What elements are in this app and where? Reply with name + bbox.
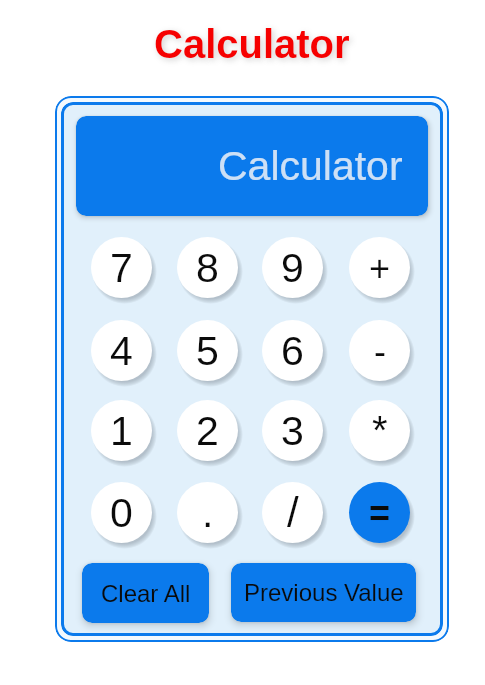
staticText: 7 — [110, 245, 133, 291]
button[interactable]: . — [177, 482, 238, 543]
button[interactable]: 9 — [262, 237, 323, 298]
staticText: / — [287, 489, 299, 536]
button[interactable]: Previous Value — [231, 563, 416, 622]
staticText: 8 — [196, 245, 219, 291]
button[interactable]: 1 — [91, 400, 152, 461]
staticText: 1 — [110, 408, 133, 454]
staticText: 2 — [196, 408, 219, 454]
button[interactable]: = — [349, 482, 410, 543]
staticText: * — [372, 408, 388, 453]
button[interactable]: 6 — [262, 320, 323, 381]
button[interactable]: 4 — [91, 320, 152, 381]
button[interactable]: Clear All — [82, 563, 209, 623]
button[interactable]: 3 — [262, 400, 323, 461]
button[interactable]: 2 — [177, 400, 238, 461]
staticText: 6 — [281, 328, 304, 374]
button[interactable]: 0 — [91, 482, 152, 543]
button[interactable]: Calculator — [76, 116, 428, 216]
staticText: . — [202, 490, 214, 536]
staticText: = — [369, 493, 391, 533]
staticText: + — [369, 248, 391, 288]
button[interactable]: + — [349, 237, 410, 298]
staticText: 4 — [110, 328, 133, 374]
button[interactable]: - — [349, 320, 410, 381]
staticText: 9 — [281, 245, 304, 291]
staticText: 5 — [196, 328, 219, 374]
staticText: Calculator — [218, 143, 403, 189]
button[interactable]: 5 — [177, 320, 238, 381]
staticText: Calculator — [154, 22, 350, 67]
button[interactable]: 7 — [91, 237, 152, 298]
button[interactable]: / — [262, 482, 323, 543]
staticText: Previous Value — [244, 579, 404, 606]
button[interactable]: * — [349, 400, 410, 461]
staticText: 0 — [110, 490, 133, 536]
button[interactable]: 8 — [177, 237, 238, 298]
staticText: Clear All — [101, 580, 191, 607]
staticText: - — [374, 331, 386, 371]
staticText: 3 — [281, 408, 304, 454]
